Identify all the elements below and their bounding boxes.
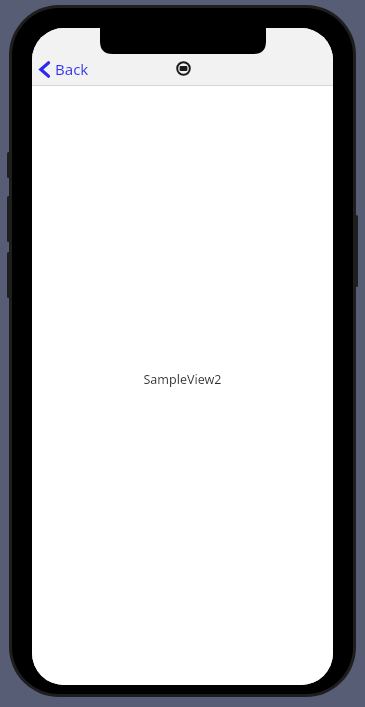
button[interactable]: Back — [32, 52, 99, 86]
staticText: SampleView2 — [143, 371, 222, 388]
staticText: Back — [55, 59, 89, 79]
button[interactable]: Preview mode — [170, 55, 196, 81]
